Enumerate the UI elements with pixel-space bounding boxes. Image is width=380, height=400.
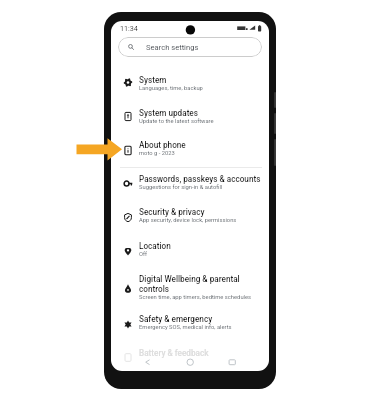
button[interactable] xyxy=(115,313,265,339)
staticText: Passwords, passkeys & accounts xyxy=(139,174,261,184)
staticText: Digital Wellbeing & parental controls xyxy=(139,274,240,294)
staticText: Suggestions for sign-in & autofill xyxy=(139,184,223,191)
button[interactable] xyxy=(115,138,265,164)
button[interactable] xyxy=(115,239,265,265)
staticText: Search settings xyxy=(146,43,199,52)
button[interactable]: Recent apps xyxy=(217,351,239,371)
button[interactable] xyxy=(115,346,265,360)
button[interactable]: Back xyxy=(138,351,160,371)
button[interactable] xyxy=(115,205,265,231)
staticText: About phone xyxy=(139,140,186,150)
staticText: moto g - 2023 xyxy=(139,150,175,157)
staticText: Screen time, app timers, bedtime schedul… xyxy=(139,294,252,301)
staticText: System updates xyxy=(139,108,198,118)
button[interactable] xyxy=(115,272,265,304)
staticText: Battery & feedback xyxy=(139,348,209,358)
staticText: Languages, time, backup xyxy=(139,85,203,92)
staticText: Security & privacy xyxy=(139,207,205,217)
button[interactable]: Search settings xyxy=(118,37,262,57)
staticText: Safety & emergency xyxy=(139,314,213,324)
staticText: Emergency SOS, medical info, alerts xyxy=(139,324,232,331)
staticText: Off xyxy=(139,251,148,258)
staticText: Location xyxy=(139,241,171,251)
button[interactable] xyxy=(115,106,265,132)
button[interactable]: Home xyxy=(179,351,201,371)
staticText: System xyxy=(139,75,167,85)
button[interactable] xyxy=(115,73,265,99)
staticText: App security, device lock, permissions xyxy=(139,217,237,224)
button[interactable] xyxy=(115,172,265,198)
staticText: Update to the latest software xyxy=(139,118,214,125)
staticText: 11:34 xyxy=(120,24,138,32)
